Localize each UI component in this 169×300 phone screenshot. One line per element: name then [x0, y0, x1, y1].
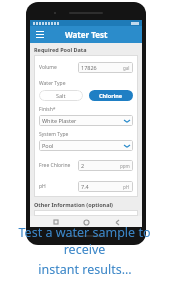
button[interactable]: White Plaster — [39, 115, 133, 126]
staticText: White Plaster — [42, 117, 77, 124]
staticText: Water Type — [39, 80, 66, 87]
button[interactable]: 2 — [78, 160, 133, 171]
staticText: ppm — [120, 163, 130, 169]
staticText: instant results... — [38, 261, 132, 278]
staticText: Required Pool Data — [34, 46, 87, 53]
staticText: Test a water sample to receive — [6, 224, 163, 258]
staticText: Finish* — [39, 106, 56, 113]
button[interactable]: Open navigation menu — [34, 29, 45, 40]
button[interactable]: Chlorine — [89, 90, 133, 101]
staticText: Chlorine — [99, 92, 123, 99]
staticText: Volume — [39, 64, 78, 71]
staticText: Pool — [42, 142, 54, 149]
staticText: pH — [39, 183, 78, 190]
staticText: Water Test — [65, 29, 108, 40]
staticText: gal — [123, 65, 130, 71]
button[interactable]: 17826 — [78, 62, 133, 73]
staticText: System Type — [39, 131, 69, 138]
staticText: Other Information (optional) — [34, 201, 113, 208]
button[interactable]: Pool — [39, 140, 133, 151]
button[interactable]: Back — [112, 217, 122, 227]
staticText: pH — [123, 184, 130, 190]
staticText: 2 — [81, 162, 85, 169]
button[interactable]: Recent apps — [51, 217, 61, 227]
staticText: 17826 — [81, 64, 97, 71]
staticText: Free Chlorine — [39, 162, 78, 169]
button[interactable]: 7.4 — [78, 181, 133, 192]
staticText: Salt — [56, 92, 66, 99]
button[interactable]: Salt — [39, 90, 83, 101]
staticText: 7.4 — [81, 183, 89, 190]
button[interactable]: Home — [81, 217, 91, 227]
